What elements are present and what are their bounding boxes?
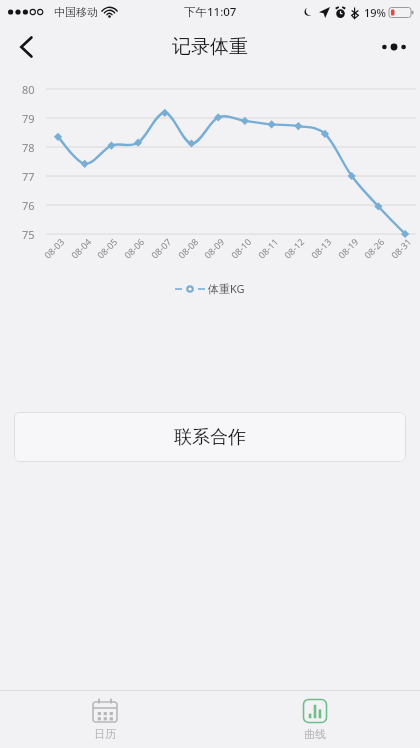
staticText: 08-10	[228, 235, 254, 261]
staticText: 08-26	[361, 235, 387, 261]
staticText: 79	[22, 111, 35, 126]
button[interactable]: 曲线	[210, 691, 420, 748]
button[interactable]: 联系合作	[14, 412, 406, 462]
staticText: 08-07	[148, 235, 174, 261]
staticText: 体重KG	[208, 281, 245, 296]
staticText: 08-06	[121, 235, 147, 261]
staticText: 08-31	[388, 235, 414, 261]
staticText: 08-19	[335, 235, 361, 261]
staticText: 77	[22, 169, 35, 184]
staticText: 08-08	[175, 235, 201, 261]
staticText: 08-05	[94, 235, 120, 261]
staticText: 日历	[94, 727, 116, 741]
staticText: 08-03	[41, 235, 67, 261]
staticText: 下午11:07	[184, 4, 237, 20]
staticText: 08-11	[255, 235, 281, 261]
staticText: 08-09	[201, 235, 227, 261]
staticText: 曲线	[304, 727, 326, 741]
staticText: 08-04	[68, 235, 94, 261]
staticText: 中国移动	[54, 5, 98, 19]
staticText: 记录体重	[172, 35, 248, 59]
button[interactable]: More options	[368, 24, 420, 70]
staticText: 78	[22, 140, 35, 155]
staticText: 联系合作	[174, 426, 246, 449]
staticText: 08-13	[308, 235, 334, 261]
staticText: 80	[22, 82, 35, 97]
staticText: 08-12	[281, 235, 307, 261]
button[interactable]: Back	[0, 24, 52, 70]
staticText: 76	[22, 198, 35, 213]
button[interactable]: 日历	[0, 691, 210, 748]
staticText: 75	[22, 227, 35, 242]
staticText: 19%	[364, 5, 386, 20]
